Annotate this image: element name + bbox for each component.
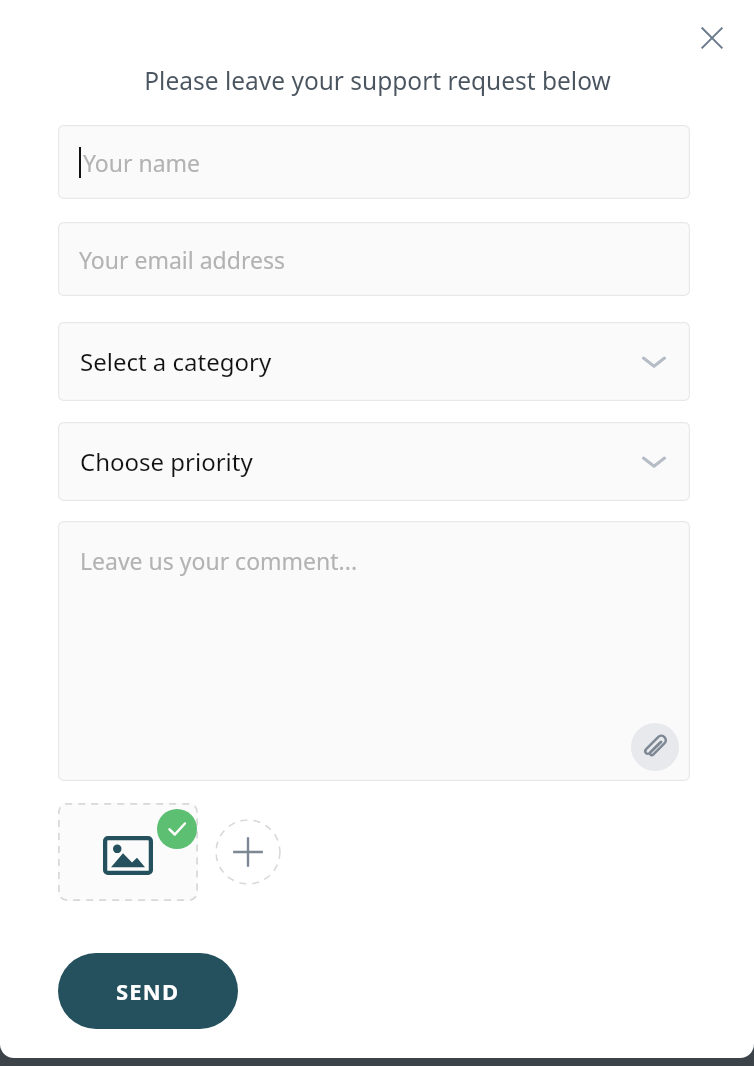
button[interactable]: Attach file: [631, 723, 679, 771]
staticText: Select a category: [80, 345, 272, 378]
staticText: Leave us your comment...: [80, 545, 358, 576]
button[interactable]: SEND: [58, 953, 238, 1029]
button[interactable]: Your name: [58, 125, 690, 199]
staticText: Please leave your support request below: [144, 64, 611, 97]
button[interactable]: Your email address: [58, 222, 690, 296]
button[interactable]: Leave us your comment...: [58, 521, 690, 781]
button[interactable]: Choose priority: [58, 422, 690, 501]
button[interactable]: Add attachment: [215, 819, 281, 885]
button[interactable]: Attached image: [58, 803, 198, 901]
staticText: Your name: [83, 147, 201, 178]
staticText: SEND: [116, 976, 180, 1006]
button[interactable]: Close: [688, 14, 736, 62]
button[interactable]: Select a category: [58, 322, 690, 401]
staticText: Choose priority: [80, 445, 253, 478]
staticText: Your email address: [79, 244, 285, 275]
